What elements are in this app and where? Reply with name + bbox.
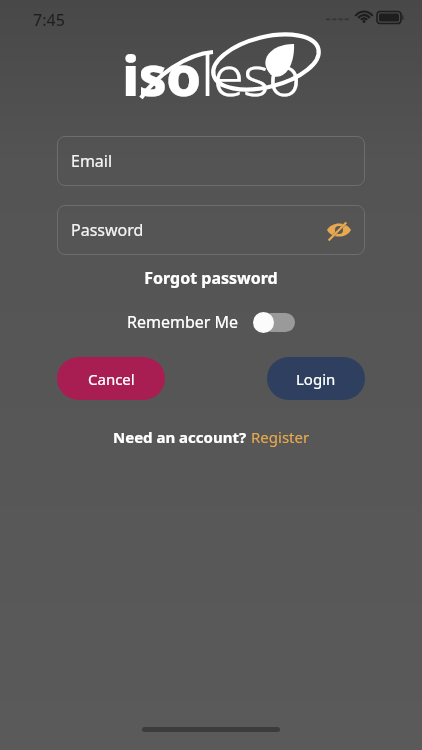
staticText: Remember Me bbox=[127, 311, 239, 333]
staticText: Need an account? bbox=[113, 427, 251, 447]
staticText: Email bbox=[71, 150, 113, 172]
button[interactable]: Show password bbox=[323, 214, 355, 246]
button[interactable]: Cancel bbox=[57, 357, 165, 400]
button[interactable]: Login bbox=[267, 357, 365, 400]
staticText: Login bbox=[296, 369, 336, 389]
staticText: 7:45 bbox=[33, 9, 65, 31]
staticText: iso bbox=[122, 36, 201, 112]
button[interactable]: Register bbox=[251, 427, 310, 447]
staticText: Password bbox=[71, 219, 144, 241]
staticText: Forgot password bbox=[144, 267, 278, 289]
button[interactable]: Email bbox=[57, 136, 365, 186]
staticText: Register bbox=[251, 427, 310, 447]
button[interactable]: Remember Me bbox=[127, 311, 295, 333]
button[interactable]: Forgot password bbox=[57, 264, 365, 292]
button[interactable]: Password bbox=[57, 205, 365, 255]
staticText: leso bbox=[201, 36, 301, 112]
staticText: Cancel bbox=[88, 369, 135, 389]
